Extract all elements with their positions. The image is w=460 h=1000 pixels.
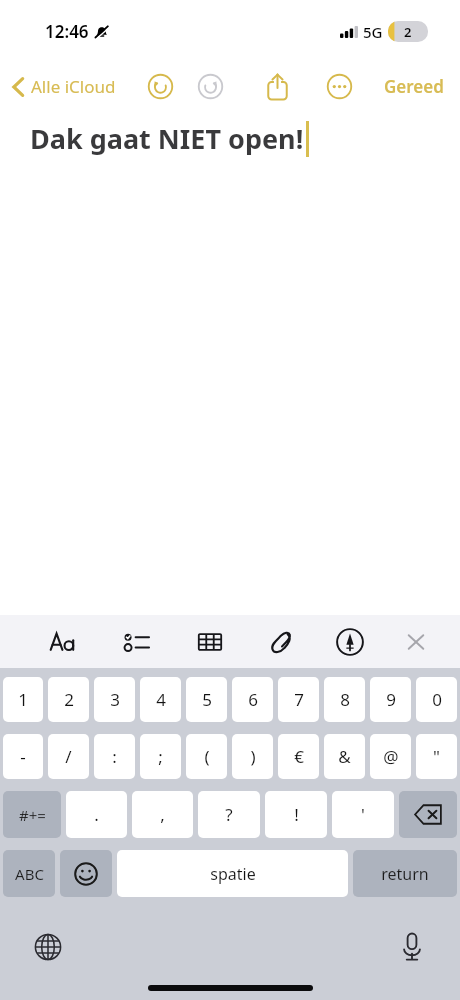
button[interactable]: 3: [94, 677, 135, 722]
staticText: Alle iCloud: [31, 75, 116, 98]
button[interactable]: &: [324, 734, 365, 779]
button[interactable]: return: [353, 850, 457, 897]
staticText: ": [433, 745, 440, 768]
button[interactable]: -: [3, 734, 43, 779]
button[interactable]: :: [94, 734, 135, 779]
staticText: spatie: [210, 863, 256, 885]
staticText: -: [20, 745, 26, 768]
staticText: #+=: [19, 805, 46, 825]
button[interactable]: ,: [132, 791, 193, 838]
staticText: 5G: [363, 22, 383, 42]
button[interactable]: 0: [416, 677, 457, 722]
button[interactable]: Redo: [192, 68, 228, 104]
button[interactable]: Dictation: [390, 925, 434, 969]
staticText: /: [65, 745, 72, 768]
button[interactable]: 2: [48, 677, 89, 722]
staticText: 6: [248, 688, 258, 711]
staticText: ?: [225, 803, 233, 826]
staticText: 2: [64, 688, 74, 711]
button[interactable]: ': [332, 791, 394, 838]
button[interactable]: Gereed: [378, 71, 450, 102]
button[interactable]: ABC: [3, 850, 55, 897]
button[interactable]: 7: [278, 677, 319, 722]
button[interactable]: Markup: [328, 620, 372, 664]
button[interactable]: ;: [140, 734, 181, 779]
staticText: 12:46: [45, 20, 89, 43]
button[interactable]: ): [232, 734, 273, 779]
staticText: ,: [160, 803, 165, 826]
button[interactable]: Share: [258, 67, 296, 105]
staticText: 7: [294, 688, 304, 711]
staticText: ': [361, 803, 365, 826]
button[interactable]: 8: [324, 677, 365, 722]
button[interactable]: .: [66, 791, 127, 838]
staticText: ): [250, 745, 256, 768]
button[interactable]: More options: [320, 67, 358, 105]
button[interactable]: Close keyboard: [394, 620, 438, 664]
button[interactable]: @: [370, 734, 411, 779]
staticText: @: [383, 745, 399, 768]
button[interactable]: Alle iCloud: [8, 71, 120, 102]
staticText: 5: [202, 688, 212, 711]
staticText: &: [338, 745, 351, 768]
button[interactable]: Backspace: [399, 791, 457, 838]
staticText: .: [94, 803, 99, 826]
button[interactable]: !: [265, 791, 327, 838]
button[interactable]: ": [416, 734, 457, 779]
button[interactable]: Attach: [260, 620, 304, 664]
button[interactable]: Checklist: [115, 620, 159, 664]
button[interactable]: spatie: [117, 850, 348, 897]
button[interactable]: /: [48, 734, 89, 779]
button[interactable]: Table: [188, 620, 232, 664]
button[interactable]: 4: [140, 677, 181, 722]
button[interactable]: 5: [186, 677, 227, 722]
staticText: 0: [432, 688, 442, 711]
button[interactable]: Emoji: [60, 850, 112, 897]
button[interactable]: 9: [370, 677, 411, 722]
staticText: 1: [18, 688, 28, 711]
staticText: :: [112, 745, 117, 768]
staticText: €: [294, 745, 304, 768]
staticText: !: [294, 803, 299, 826]
button[interactable]: (: [186, 734, 227, 779]
button[interactable]: 1: [3, 677, 43, 722]
staticText: Dak gaat NIET open!: [30, 120, 304, 157]
button[interactable]: 6: [232, 677, 273, 722]
button[interactable]: €: [278, 734, 319, 779]
button[interactable]: ?: [198, 791, 260, 838]
staticText: ;: [158, 745, 163, 768]
staticText: 3: [110, 688, 120, 711]
staticText: 2: [404, 23, 412, 41]
button[interactable]: Text format: [41, 620, 85, 664]
staticText: ABC: [15, 864, 44, 884]
staticText: return: [381, 863, 429, 885]
button[interactable]: Undo: [142, 68, 178, 104]
staticText: 9: [386, 688, 396, 711]
staticText: 4: [156, 688, 166, 711]
button[interactable]: #+=: [3, 791, 61, 838]
staticText: (: [204, 745, 210, 768]
staticText: Gereed: [384, 75, 444, 98]
button[interactable]: Change keyboard language: [26, 925, 70, 969]
staticText: 8: [340, 688, 350, 711]
